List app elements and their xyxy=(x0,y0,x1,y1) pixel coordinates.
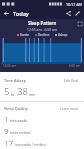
staticText: Edit Goal xyxy=(64,78,79,83)
staticText: Sleep Pattern xyxy=(28,20,57,26)
button[interactable]: 9 xyxy=(0,125,84,136)
button[interactable]: 17 xyxy=(0,137,84,148)
staticText: Today xyxy=(13,10,29,18)
staticText: Awake xyxy=(20,33,30,37)
staticText: Time Asleep xyxy=(4,78,26,83)
staticText: 17 xyxy=(4,137,14,148)
staticText: hr xyxy=(11,92,15,97)
staticText: Restless xyxy=(38,33,50,37)
button[interactable]: Expand chart xyxy=(75,19,84,28)
staticText: Sleep Quality xyxy=(4,106,28,111)
button[interactable]: Edit Goal xyxy=(63,77,80,84)
button[interactable]: 1 xyxy=(0,113,84,124)
staticText: time awake xyxy=(10,119,28,123)
staticText: 38 xyxy=(17,85,28,98)
staticText: 1 xyxy=(4,113,9,124)
button[interactable]: Learn more xyxy=(59,105,80,112)
button[interactable]: Edit xyxy=(73,9,82,18)
staticText: 6:50 am xyxy=(69,64,81,68)
staticText: times restless xyxy=(10,131,31,135)
staticText: Learn more xyxy=(60,106,79,111)
staticText: min awake / restless xyxy=(15,143,46,147)
staticText: min xyxy=(29,92,36,97)
staticText: Asleep xyxy=(58,33,68,37)
staticText: 12:55 am xyxy=(3,64,16,68)
staticText: 12:55 am - 6:50 am xyxy=(27,27,58,32)
staticText: 9 xyxy=(4,125,9,136)
staticText: 5 xyxy=(4,85,10,98)
button[interactable]: Back xyxy=(2,9,11,18)
button[interactable]: Share xyxy=(64,9,73,18)
staticText: 10:17 AM xyxy=(66,2,82,7)
